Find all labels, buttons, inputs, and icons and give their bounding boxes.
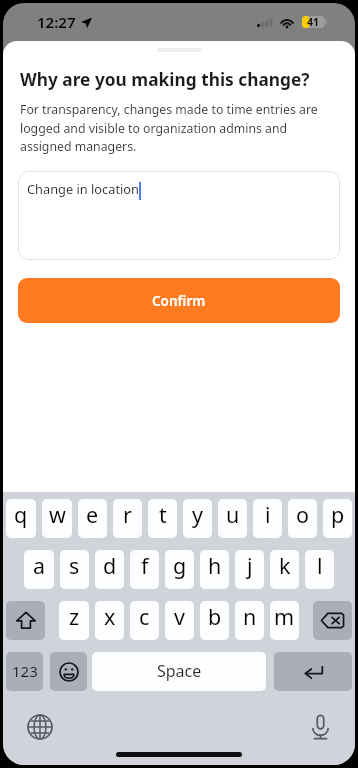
button[interactable]: Dictate [307, 713, 334, 740]
button[interactable]: c [130, 601, 159, 640]
staticText: d [103, 551, 117, 580]
button[interactable]: r [113, 499, 142, 538]
button[interactable]: y [183, 499, 212, 538]
staticText: f [141, 551, 149, 580]
staticText: u [226, 500, 240, 529]
staticText: 123 [12, 661, 38, 681]
staticText: c [139, 602, 150, 631]
button[interactable]: n [235, 601, 264, 640]
button[interactable]: q [6, 499, 36, 538]
button[interactable]: Return [274, 652, 352, 691]
button[interactable]: m [270, 601, 299, 640]
staticText: y [192, 500, 203, 529]
button[interactable]: p [323, 499, 352, 538]
staticText: x [104, 602, 116, 631]
button[interactable]: u [218, 499, 247, 538]
staticText: Confirm [152, 292, 206, 310]
staticText: w [49, 500, 66, 529]
staticText: j [247, 551, 253, 580]
button[interactable]: Emoji [50, 652, 87, 691]
staticText: o [296, 500, 310, 529]
staticText: g [173, 551, 187, 580]
button[interactable]: t [148, 499, 177, 538]
button[interactable]: Change keyboard [26, 713, 53, 740]
button[interactable]: h [200, 550, 229, 589]
staticText: Change in location [27, 180, 139, 197]
staticText: m [274, 602, 295, 631]
button[interactable]: l [305, 550, 334, 589]
button[interactable]: v [165, 601, 194, 640]
staticText: r [123, 500, 132, 529]
button[interactable]: Backspace [313, 601, 352, 640]
button[interactable]: g [165, 550, 194, 589]
button[interactable]: Confirm [18, 278, 340, 323]
button[interactable]: d [95, 550, 124, 589]
button[interactable]: z [59, 601, 89, 640]
button[interactable]: k [270, 550, 299, 589]
staticText: i [265, 500, 271, 529]
staticText: 41 [307, 15, 320, 29]
staticText: Space [157, 660, 202, 682]
button[interactable]: x [95, 601, 124, 640]
staticText: 12:27 [37, 12, 76, 32]
staticText: p [331, 500, 345, 529]
button[interactable]: s [60, 550, 89, 589]
button[interactable]: a [24, 550, 54, 589]
staticText: n [243, 602, 257, 631]
staticText: For transparency, changes made to time e… [20, 101, 338, 154]
button[interactable]: Change in location [18, 171, 340, 260]
button[interactable]: o [288, 499, 317, 538]
staticText: a [33, 551, 46, 580]
button[interactable]: e [78, 499, 107, 538]
staticText: h [208, 551, 222, 580]
staticText: t [159, 500, 167, 529]
staticText: k [279, 551, 291, 580]
button[interactable]: f [130, 550, 159, 589]
staticText: Why are you making this change? [20, 68, 310, 92]
staticText: s [69, 551, 80, 580]
staticText: l [317, 551, 323, 580]
button[interactable]: Space [92, 652, 266, 691]
staticText: z [69, 602, 80, 631]
button[interactable]: j [235, 550, 264, 589]
button[interactable]: w [42, 499, 72, 538]
button[interactable]: i [253, 499, 282, 538]
button[interactable]: 123 [6, 652, 43, 691]
button[interactable]: Shift [6, 601, 45, 640]
button[interactable]: b [200, 601, 229, 640]
staticText: b [208, 602, 222, 631]
staticText: e [86, 500, 99, 529]
staticText: q [14, 500, 28, 529]
staticText: v [174, 602, 185, 631]
